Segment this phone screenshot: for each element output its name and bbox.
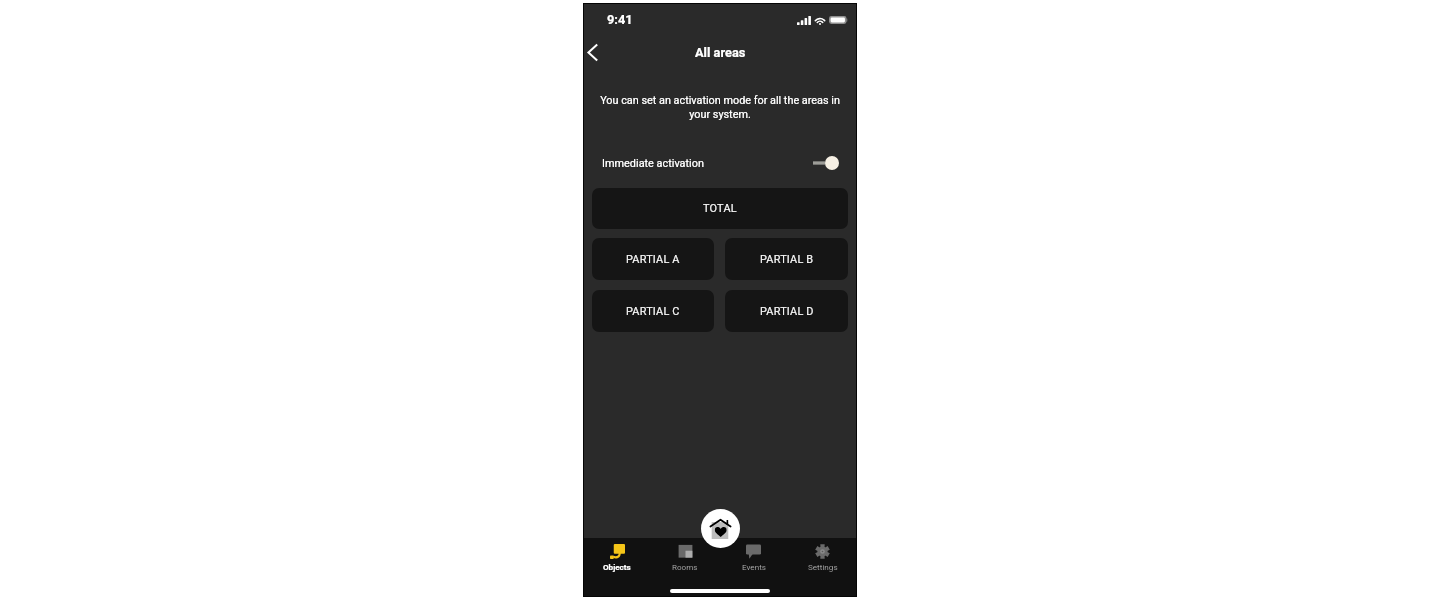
button[interactable]: Events: [719, 538, 788, 578]
button[interactable]: PARTIAL D: [725, 290, 848, 332]
button[interactable]: Objects: [583, 538, 651, 578]
staticText: TOTAL: [703, 202, 737, 215]
staticText: 9:41: [607, 12, 633, 27]
button[interactable]: PARTIAL C: [592, 290, 714, 332]
button[interactable]: Home: [701, 509, 740, 548]
staticText: You can set an activation mode for all t…: [598, 94, 842, 120]
staticText: Settings: [808, 562, 838, 571]
button[interactable]: TOTAL: [592, 188, 848, 229]
staticText: PARTIAL A: [626, 253, 680, 266]
button[interactable]: Settings: [788, 538, 857, 578]
staticText: Events: [742, 562, 766, 571]
staticText: Rooms: [672, 562, 698, 571]
button[interactable]: PARTIAL A: [592, 238, 714, 280]
staticText: All areas: [695, 45, 746, 60]
staticText: PARTIAL C: [626, 305, 680, 318]
staticText: PARTIAL D: [760, 305, 814, 318]
staticText: Objects: [603, 562, 631, 571]
staticText: PARTIAL B: [760, 253, 814, 266]
button[interactable]: Back: [581, 41, 604, 64]
button[interactable]: PARTIAL B: [725, 238, 848, 280]
staticText: Immediate activation: [602, 157, 704, 170]
button[interactable]: Rooms: [651, 538, 719, 578]
button[interactable]: Immediate activation: [583, 149, 857, 177]
